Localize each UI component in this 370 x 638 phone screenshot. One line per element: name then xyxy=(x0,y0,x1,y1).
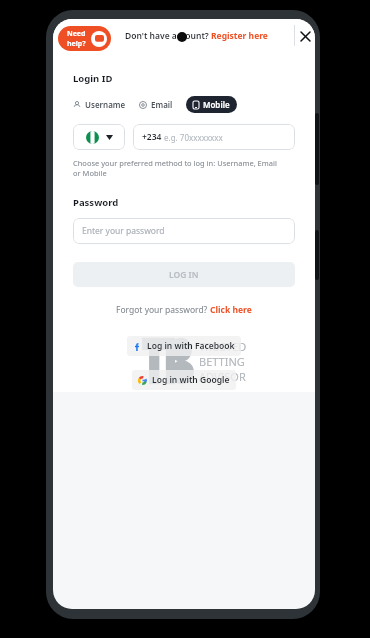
staticText: Don't have account? xyxy=(125,30,211,42)
button[interactable]: Log in with Facebook xyxy=(127,336,241,356)
button[interactable]: Click here xyxy=(210,304,252,316)
button[interactable]: Email xyxy=(139,96,173,113)
staticText: Mobile xyxy=(203,99,230,110)
staticText: help? xyxy=(67,39,86,49)
staticText: Forgot your password? xyxy=(116,304,210,316)
button[interactable]: Enter your password xyxy=(73,218,295,244)
staticText: Click here xyxy=(210,304,252,316)
staticText: or Mobile xyxy=(73,168,107,178)
button[interactable]: Select country code xyxy=(73,124,125,150)
staticText: TRUSTED xyxy=(199,339,247,354)
button[interactable]: Register here xyxy=(211,30,268,42)
staticText: Need xyxy=(67,29,86,39)
button[interactable]: Need xyxy=(58,26,111,51)
staticText: Login ID xyxy=(73,72,113,85)
button[interactable]: Close xyxy=(295,26,315,46)
staticText: Log in with Facebook xyxy=(147,340,235,352)
staticText: Username xyxy=(85,99,126,110)
staticText: BETTING xyxy=(199,354,245,369)
button[interactable]: Mobile xyxy=(193,96,230,113)
staticText: Password xyxy=(73,196,119,209)
button[interactable]: Log in with Google xyxy=(132,370,236,390)
button[interactable]: Username xyxy=(73,96,126,113)
staticText: Email xyxy=(151,99,173,110)
staticText: +234 xyxy=(142,131,164,143)
button[interactable]: +234 xyxy=(133,124,295,150)
staticText: Choose your preferred method to log in: … xyxy=(73,158,277,168)
staticText: Register here xyxy=(211,30,268,42)
staticText: Log in with Google xyxy=(152,374,230,386)
staticText: Enter your password xyxy=(82,225,165,237)
staticText: LOG IN xyxy=(169,269,199,281)
staticText: e.g. 70xxxxxxxx xyxy=(164,132,223,143)
button[interactable]: LOG IN xyxy=(73,262,295,287)
staticText: ADVISOR xyxy=(199,369,246,384)
